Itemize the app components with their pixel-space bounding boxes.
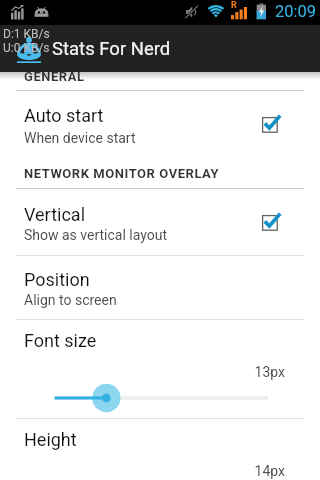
staticText: When device start bbox=[24, 130, 136, 146]
staticText: 13px bbox=[0, 364, 285, 380]
staticText: Height bbox=[24, 429, 77, 450]
staticText: 14px bbox=[0, 463, 285, 479]
staticText: Position bbox=[24, 269, 90, 290]
staticText: Vertical bbox=[24, 204, 86, 225]
staticText: NETWORK MONITOR OVERLAY bbox=[24, 166, 220, 181]
button[interactable] bbox=[0, 256, 320, 319]
button[interactable] bbox=[0, 320, 320, 418]
staticText: Font size bbox=[24, 330, 97, 351]
staticText: U:0 KB/s bbox=[3, 41, 50, 55]
staticText: Stats For Nerd bbox=[52, 38, 171, 60]
staticText: Show as vertical layout bbox=[24, 227, 168, 243]
staticText: R bbox=[231, 0, 237, 11]
button[interactable]: Toggle setting bbox=[250, 203, 288, 241]
staticText: Auto start bbox=[24, 105, 104, 126]
button[interactable] bbox=[0, 419, 320, 480]
staticText: 20:09 bbox=[275, 2, 317, 21]
button[interactable]: Adjust value bbox=[0, 382, 320, 414]
staticText: Align to screen bbox=[24, 292, 117, 308]
button[interactable] bbox=[0, 189, 320, 255]
staticText: GENERAL bbox=[24, 69, 85, 84]
button[interactable]: Toggle setting bbox=[250, 105, 288, 143]
staticText: D:1 KB/s bbox=[3, 27, 50, 41]
button[interactable] bbox=[0, 91, 320, 156]
